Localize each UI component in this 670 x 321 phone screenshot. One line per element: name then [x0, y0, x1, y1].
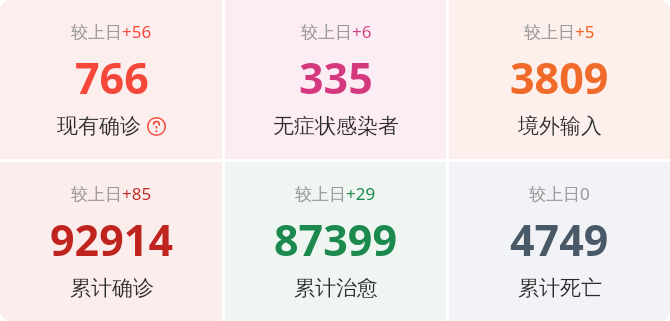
button[interactable]: 较上日0: [449, 162, 670, 321]
button[interactable]: 较上日+56: [0, 0, 222, 159]
staticText: 较上日0: [529, 182, 590, 205]
staticText: 无症状感染者: [273, 113, 399, 139]
button[interactable]: Help about current confirmed cases: [147, 117, 166, 136]
staticText: 累计确诊: [70, 275, 154, 301]
button[interactable]: 较上日+5: [449, 0, 670, 159]
button[interactable]: 较上日+6: [225, 0, 446, 159]
staticText: 现有确诊: [57, 113, 141, 139]
staticText: 766: [75, 48, 149, 107]
staticText: 较上日+85: [71, 182, 152, 205]
staticText: 4749: [510, 210, 609, 269]
staticText: 92914: [50, 210, 173, 269]
staticText: 累计死亡: [518, 275, 602, 301]
staticText: 累计治愈: [294, 275, 378, 301]
button[interactable]: 较上日+85: [0, 162, 222, 321]
staticText: 较上日+29: [295, 182, 376, 205]
staticText: 335: [299, 48, 373, 107]
staticText: 较上日+5: [524, 20, 595, 43]
staticText: 3809: [510, 48, 609, 107]
staticText: 87399: [274, 210, 397, 269]
button[interactable]: 较上日+29: [225, 162, 446, 321]
staticText: 较上日+56: [71, 20, 152, 43]
staticText: 境外输入: [518, 113, 602, 139]
staticText: 较上日+6: [301, 20, 372, 43]
